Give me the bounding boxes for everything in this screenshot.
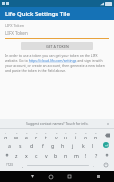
button[interactable]: z [12, 151, 21, 159]
button[interactable]: l [88, 141, 98, 149]
button[interactable]: m [71, 151, 81, 159]
staticText: d [30, 142, 34, 149]
button[interactable]: ! [81, 151, 91, 159]
staticText: c [35, 152, 38, 159]
staticText: 5 [45, 131, 47, 134]
staticText: 6 [56, 131, 58, 134]
staticText: LIFX Token [5, 23, 25, 28]
staticText: p [94, 134, 98, 139]
button[interactable]: 8 [71, 131, 81, 139]
button[interactable]: d [26, 141, 37, 149]
staticText: e [25, 134, 28, 139]
staticText: . [93, 163, 95, 168]
button[interactable]: 3 [21, 131, 31, 139]
staticText: ?123 [6, 163, 13, 167]
staticText: 1 [5, 131, 7, 134]
button[interactable]: Space [27, 161, 89, 169]
staticText: 8 [75, 131, 77, 134]
button[interactable]: Hide keyboard [89, 171, 107, 182]
button[interactable]: Keyboard settings [106, 122, 110, 126]
staticText: q [4, 134, 8, 139]
staticText: j [72, 142, 74, 149]
staticText: , [22, 163, 24, 168]
button[interactable]: x [21, 151, 31, 159]
button[interactable]: 7 [61, 131, 71, 139]
staticText: t [45, 134, 47, 139]
button[interactable]: n [61, 151, 71, 159]
staticText: Suggest contact names? Touch for info. [26, 121, 89, 126]
button[interactable]: s [15, 141, 26, 149]
staticText: h [61, 142, 65, 149]
button[interactable]: Backspace [101, 131, 113, 139]
staticText: GET A TOKEN [46, 44, 69, 49]
button[interactable]: k [78, 141, 88, 149]
button[interactable]: Shift [101, 151, 113, 159]
staticText: k [82, 142, 85, 149]
button[interactable]: h [58, 141, 68, 149]
button[interactable]: a [4, 141, 15, 149]
staticText: u [64, 134, 68, 139]
button[interactable]: 1 [1, 131, 11, 139]
staticText: g [51, 142, 55, 149]
button[interactable]: Home [42, 171, 60, 182]
staticText: n [64, 152, 68, 159]
button[interactable]: LIFX Token [5, 30, 109, 39]
button[interactable]: j [68, 141, 78, 149]
button[interactable]: 9 [81, 131, 91, 139]
button[interactable]: ?123 [1, 161, 18, 169]
button[interactable]: c [31, 151, 41, 159]
staticText: 9 [85, 131, 87, 134]
staticText: v [45, 152, 48, 159]
button[interactable]: g [48, 141, 58, 149]
button[interactable]: 2 [11, 131, 21, 139]
staticText: s [19, 142, 22, 149]
staticText: m [74, 152, 79, 159]
staticText: b [54, 152, 58, 159]
button[interactable]: 5 [41, 131, 51, 139]
staticText: 2 [16, 131, 18, 134]
button[interactable]: 0 [91, 131, 101, 139]
button[interactable]: GET A TOKEN [21, 42, 93, 50]
staticText: ? [95, 152, 98, 159]
button[interactable]: , [18, 161, 27, 169]
staticText: a [8, 142, 11, 149]
button[interactable]: f [37, 141, 48, 149]
staticText: ! [85, 152, 87, 159]
staticText: 3 [26, 131, 28, 134]
staticText: z [15, 152, 18, 159]
button[interactable]: Recents [60, 171, 78, 182]
staticText: 7 [65, 131, 67, 134]
staticText: l [92, 142, 94, 149]
button[interactable]: 4 [31, 131, 41, 139]
staticText: y [55, 134, 58, 139]
button[interactable]: Emoji [98, 161, 113, 169]
staticText: In order to use a token you can get your… [5, 53, 109, 73]
staticText: o [84, 134, 88, 139]
staticText: f [42, 142, 44, 149]
button[interactable]: Shift [1, 151, 12, 159]
staticText: r [35, 134, 38, 139]
staticText: 0 [95, 131, 97, 134]
button[interactable]: v [41, 151, 51, 159]
button[interactable]: 6 [51, 131, 61, 139]
staticText: i [75, 134, 77, 139]
staticText: w [14, 134, 19, 139]
staticText: 4 [36, 131, 38, 134]
button[interactable]: ? [91, 151, 101, 159]
staticText: x [25, 152, 28, 159]
button[interactable]: Enter [98, 141, 113, 149]
staticText: LIFX Token [5, 30, 28, 36]
button[interactable]: Back [23, 171, 42, 182]
staticText: Life Quick Settings Tile [5, 10, 70, 18]
button[interactable]: b [51, 151, 61, 159]
